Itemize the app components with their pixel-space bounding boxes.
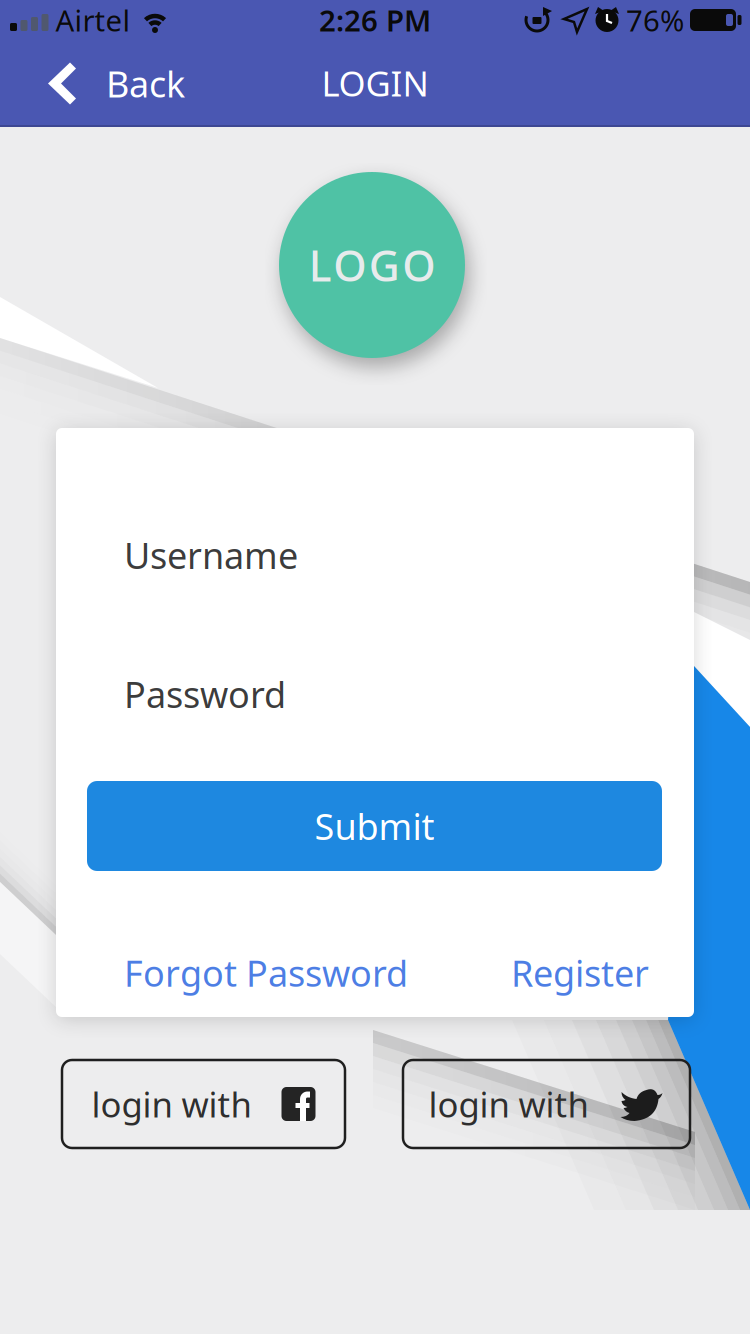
button[interactable]: Password xyxy=(56,658,694,730)
staticText: login with xyxy=(428,1081,588,1127)
staticText: Register xyxy=(511,949,649,997)
button[interactable]: login with xyxy=(403,1060,690,1148)
staticText: Submit xyxy=(314,802,434,850)
staticText: LOGIN xyxy=(321,60,428,106)
staticText: LOGO xyxy=(309,237,435,293)
staticText: Password xyxy=(124,670,286,718)
staticText: login with xyxy=(91,1081,251,1127)
button[interactable]: Username xyxy=(56,519,694,591)
staticText: 2:26 PM xyxy=(319,0,431,39)
staticText: Airtel xyxy=(55,0,130,39)
button[interactable]: login with xyxy=(62,1060,345,1148)
button[interactable]: Submit xyxy=(87,781,662,871)
staticText: Forgot Password xyxy=(124,949,408,997)
button[interactable]: Forgot Password xyxy=(124,949,408,997)
staticText: 76% xyxy=(626,0,684,39)
staticText: Back xyxy=(106,60,185,107)
staticText: Username xyxy=(124,531,298,579)
button[interactable]: Back xyxy=(48,40,185,127)
button[interactable]: Register xyxy=(511,949,649,997)
